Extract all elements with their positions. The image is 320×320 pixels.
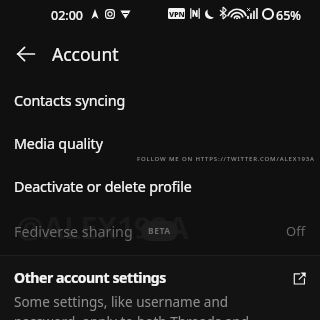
- staticText: Off: [286, 222, 306, 240]
- staticText: Contacts syncing: [14, 91, 126, 110]
- button[interactable]: Other account settings: [0, 255, 320, 320]
- staticText: Some settings, like username and passwor…: [14, 293, 249, 320]
- staticText: VPN: [169, 9, 185, 19]
- staticText: 02:00: [51, 7, 84, 24]
- button[interactable]: Open external link: [290, 269, 308, 287]
- button[interactable]: Deactivate or delete profile: [0, 165, 320, 208]
- staticText: Fediverse sharing: [14, 222, 133, 241]
- button[interactable]: Back: [9, 37, 43, 71]
- staticText: Deactivate or delete profile: [14, 177, 192, 196]
- staticText: Media quality: [14, 134, 103, 153]
- staticText: 65%: [276, 7, 301, 24]
- button[interactable]: Fediverse sharing: [0, 213, 320, 249]
- staticText: FOLLOW ME ON HTTPS://TWITTER.COM/ALEX193…: [137, 155, 315, 163]
- staticText: BETA: [148, 225, 171, 237]
- button[interactable]: Contacts syncing: [0, 79, 320, 122]
- staticText: @ALEX193A: [16, 206, 189, 248]
- button[interactable]: Media quality: [0, 122, 320, 165]
- staticText: Account: [52, 42, 119, 66]
- staticText: Other account settings: [14, 268, 166, 287]
